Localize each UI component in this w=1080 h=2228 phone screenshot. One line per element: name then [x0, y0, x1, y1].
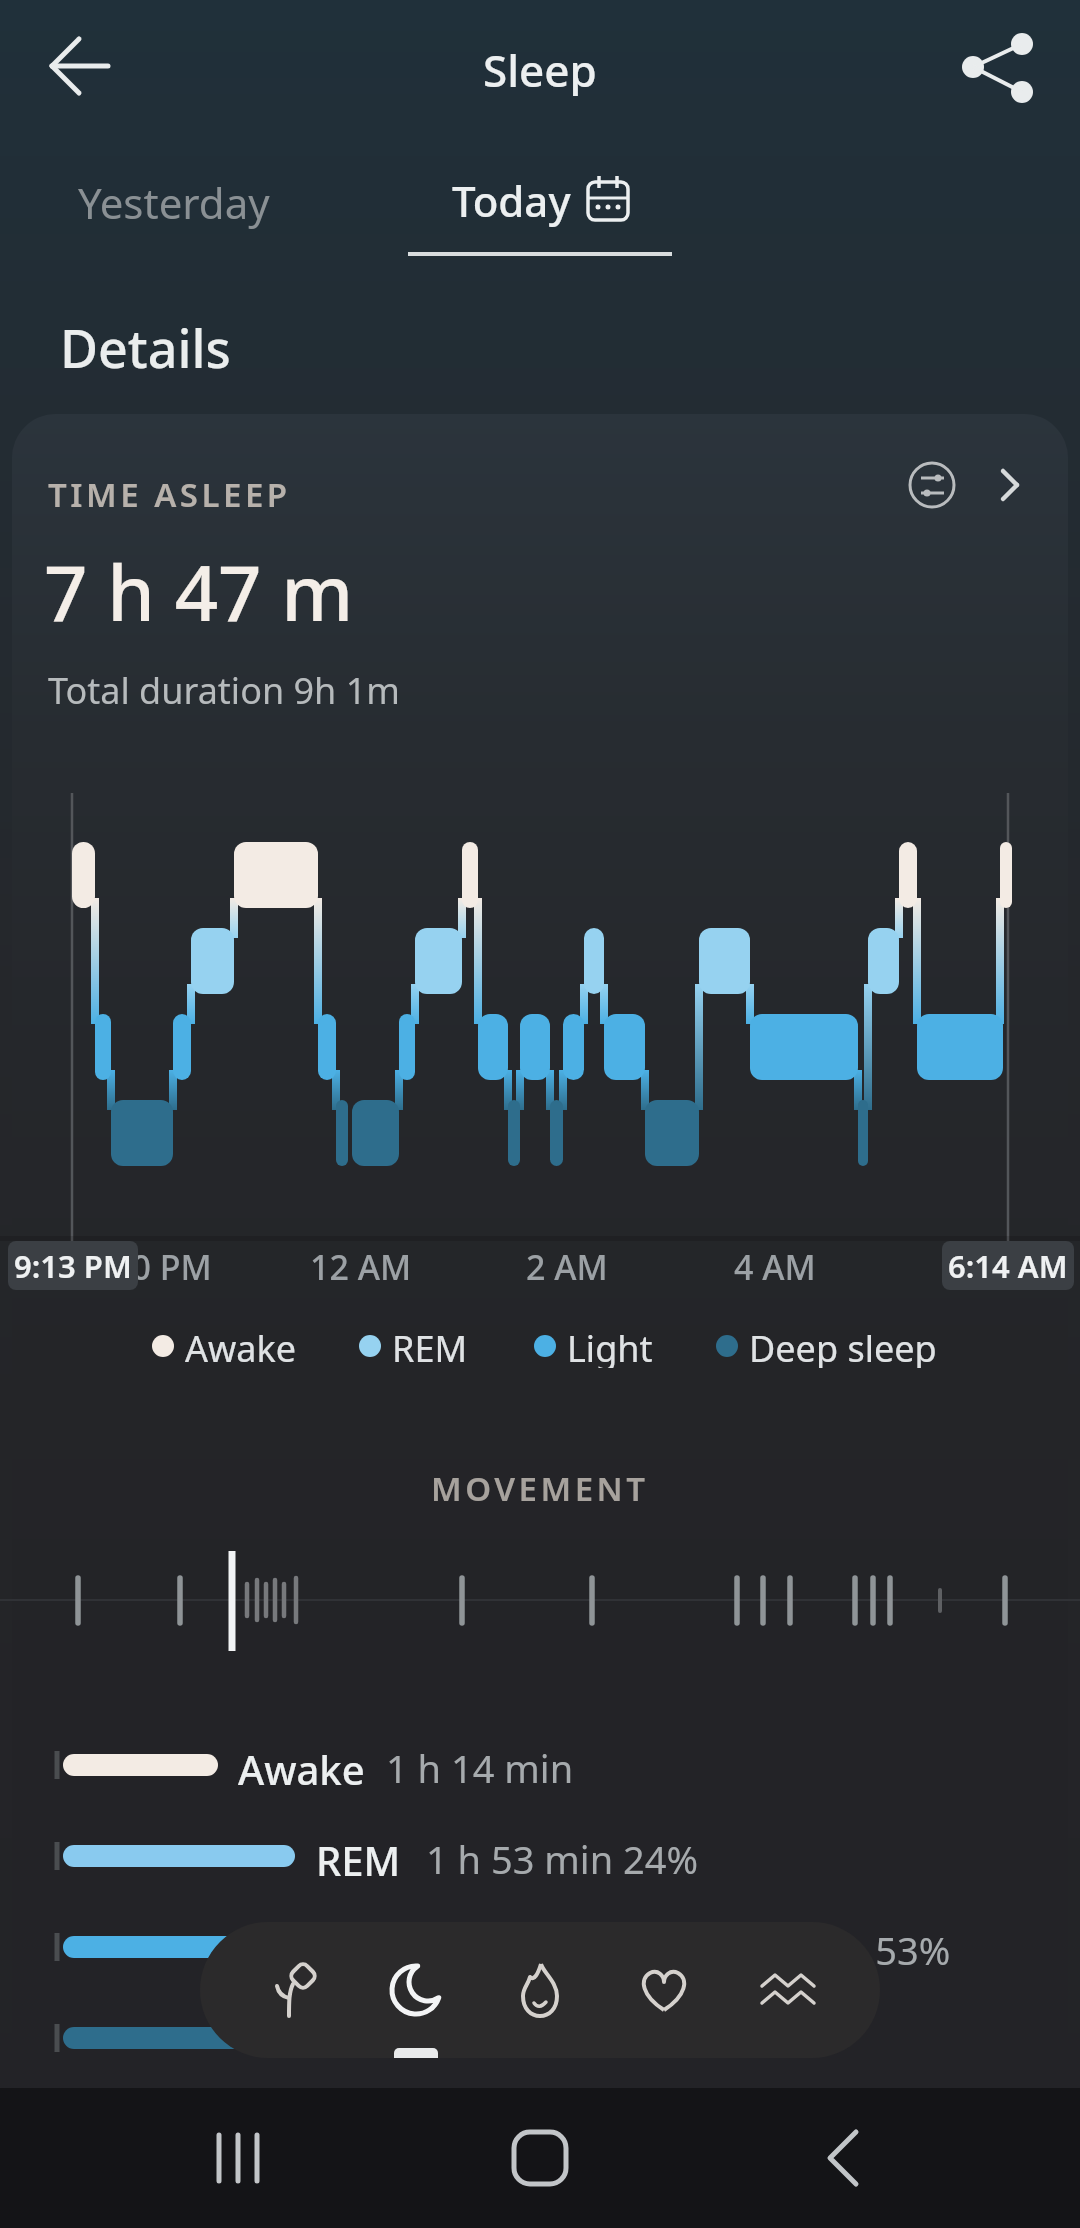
staticText: 1 h 14 min	[386, 1742, 574, 1788]
staticText: 2 AM	[526, 1244, 608, 1286]
button[interactable]	[460, 2088, 620, 2228]
staticText: MOVEMENT	[431, 1466, 649, 1510]
staticText: Deep sleep	[749, 1324, 937, 1368]
button[interactable]	[160, 2088, 320, 2228]
staticText: Total duration 9h 1m	[48, 666, 400, 708]
button[interactable]	[478, 1922, 602, 2058]
staticText: REM	[392, 1324, 468, 1368]
staticText: Today	[452, 172, 571, 228]
button[interactable]	[28, 28, 132, 104]
staticText: 10 PM	[112, 1244, 212, 1286]
button[interactable]	[726, 1922, 850, 2058]
staticText: Awake	[238, 1742, 365, 1788]
button[interactable]	[230, 1922, 354, 2058]
button[interactable]	[760, 2088, 920, 2228]
staticText: Sleep	[483, 40, 597, 96]
staticText: TIME ASLEEP	[48, 472, 291, 512]
staticText: REM	[316, 1833, 401, 1879]
staticText: 1 h 53 min 24%	[426, 1833, 699, 1879]
staticText: 4 h 8 min 53%	[700, 1924, 951, 1970]
button[interactable]	[944, 20, 1056, 116]
button[interactable]	[602, 1922, 726, 2058]
staticText: Yesterday	[78, 174, 270, 230]
staticText: Light	[567, 1324, 653, 1368]
staticText: 12 AM	[310, 1244, 412, 1286]
button[interactable]	[880, 440, 1050, 532]
staticText: Deep sleep	[317, 2012, 529, 2054]
staticText: 9:13 PM	[14, 1245, 132, 1287]
staticText: 7 h 47 m	[44, 540, 354, 632]
staticText: Awake	[185, 1324, 297, 1368]
staticText: 6:14 AM	[948, 1245, 1068, 1287]
button[interactable]	[354, 1922, 478, 2058]
staticText: Details	[60, 312, 231, 374]
staticText: 4 AM	[734, 1244, 816, 1286]
button[interactable]	[408, 150, 672, 260]
button[interactable]	[60, 160, 310, 244]
